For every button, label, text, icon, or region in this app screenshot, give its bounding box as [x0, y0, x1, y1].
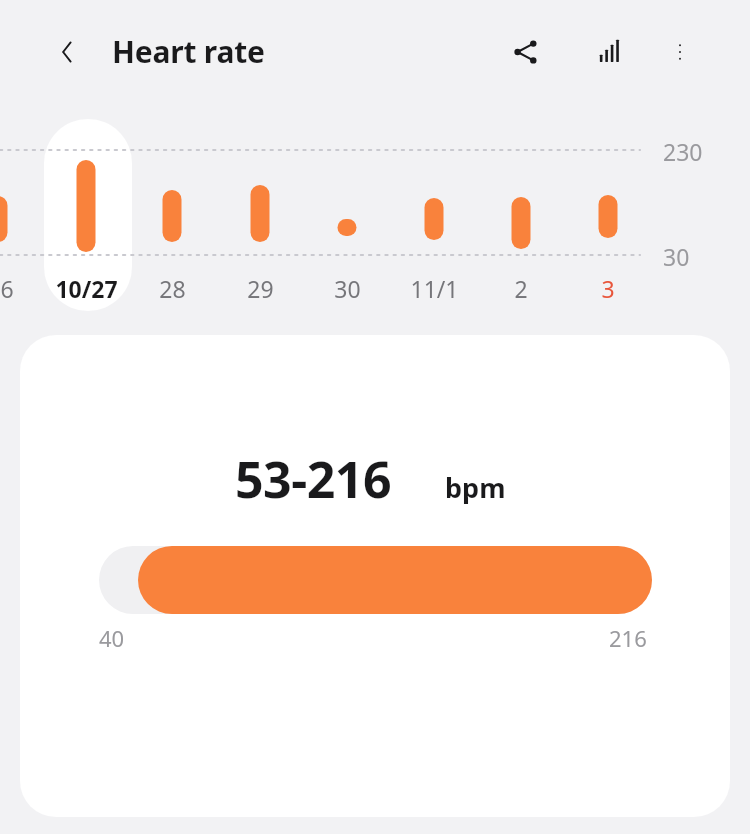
staticText: 216: [609, 623, 647, 653]
button[interactable]: 2: [479, 268, 563, 308]
staticText: 29: [247, 273, 274, 304]
button[interactable]: 53-216: [20, 335, 730, 817]
button[interactable]: 28: [130, 268, 214, 308]
button[interactable]: 11/1: [392, 268, 476, 308]
button[interactable]: More options: [656, 28, 704, 76]
button[interactable]: [44, 119, 132, 311]
staticText: 30: [334, 273, 361, 304]
staticText: 53-216: [235, 445, 391, 513]
button[interactable]: 10/27: [44, 268, 128, 308]
staticText: bpm: [445, 469, 506, 506]
staticText: 230: [663, 136, 703, 167]
button[interactable]: Share: [502, 28, 550, 76]
staticText: Heart rate: [112, 31, 265, 72]
staticText: 6: [0, 273, 14, 304]
staticText: 11/1: [410, 273, 459, 304]
button[interactable]: 6: [0, 268, 49, 308]
button[interactable]: 29: [218, 268, 302, 308]
button[interactable]: Back: [44, 28, 92, 76]
staticText: 40: [99, 623, 125, 653]
staticText: 28: [159, 273, 186, 304]
button[interactable]: Chart view: [586, 28, 634, 76]
staticText: 10/27: [55, 273, 118, 304]
staticText: 3: [601, 273, 615, 304]
button[interactable]: 3: [566, 268, 650, 308]
staticText: 30: [663, 241, 690, 272]
staticText: 2: [514, 273, 528, 304]
button[interactable]: 30: [305, 268, 389, 308]
